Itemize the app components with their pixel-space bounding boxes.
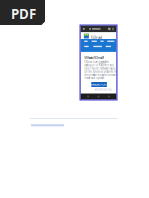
staticText: for the Android platform. The xyxy=(84,70,118,73)
staticText: client makes it easy to browse, xyxy=(84,73,117,77)
button[interactable]: DOWNLOAD F-DROID xyxy=(91,82,107,87)
staticText: F-Droid is an installable xyxy=(84,60,110,64)
staticText: via f-droid.org xyxy=(94,88,112,91)
staticText: Open Source Software) apps xyxy=(84,67,115,70)
staticText: PDF xyxy=(11,5,36,23)
staticText: install and update. xyxy=(84,76,105,80)
staticText: catalogue of FOSS (Free and xyxy=(84,63,114,67)
staticText: F-Droid xyxy=(91,34,102,40)
staticText: What is F-Droid? xyxy=(84,55,104,60)
staticText: DOWNLOAD F-DROID xyxy=(88,83,110,86)
button[interactable]: Figure source link xyxy=(31,124,64,126)
